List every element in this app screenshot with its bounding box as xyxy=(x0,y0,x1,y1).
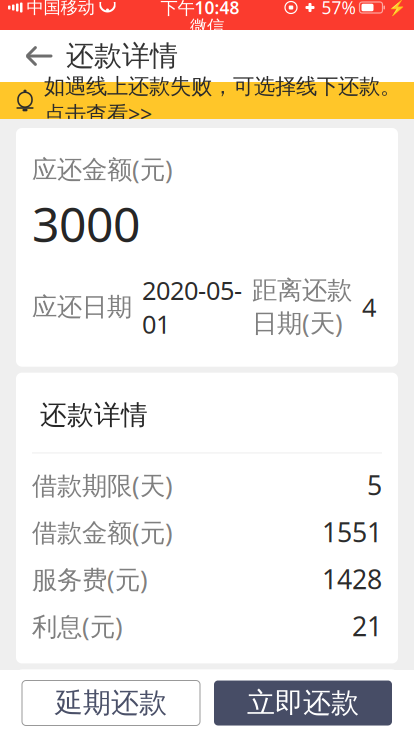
staticText: 应还日期 xyxy=(32,291,132,323)
staticText: 微信 xyxy=(190,16,224,37)
staticText: 4 xyxy=(362,290,376,324)
staticText: 借款金额(元) xyxy=(32,515,173,549)
staticText: 2020-05-01 xyxy=(142,273,242,341)
staticText: ⚡ xyxy=(388,0,406,16)
staticText: 还款详情 xyxy=(40,695,148,728)
staticText: 距离还款日期(天) xyxy=(252,275,352,339)
staticText: 服务费(元) xyxy=(32,562,148,596)
staticText: 还款详情 xyxy=(40,399,148,431)
button[interactable]: 返回 xyxy=(14,30,66,82)
staticText: 57% xyxy=(321,0,355,19)
staticText: 延期还款 xyxy=(55,686,167,720)
button[interactable]: 延期还款 xyxy=(22,680,200,725)
staticText: 1551 xyxy=(322,514,382,550)
staticText: 下午10:48 xyxy=(160,0,239,19)
staticText: 还款详情 xyxy=(66,39,178,73)
staticText: 1428 xyxy=(322,561,382,597)
staticText: 如遇线上还款失败，可选择线下还款。点击查看>> xyxy=(44,73,401,128)
staticText: 5 xyxy=(367,467,382,503)
staticText: 利息(元) xyxy=(32,609,123,643)
staticText: 借款期限(天) xyxy=(32,468,173,502)
button[interactable]: 立即还款 xyxy=(214,680,392,725)
staticText: 立即还款 xyxy=(247,686,359,720)
button[interactable]: 如遇线上还款失败，可选择线下还款。点击查看>> xyxy=(0,82,414,119)
staticText: 3000 xyxy=(32,192,140,255)
staticText: 中国移动 xyxy=(26,0,94,18)
staticText: 21 xyxy=(352,608,382,644)
staticText: 应还金额(元) xyxy=(32,152,173,186)
